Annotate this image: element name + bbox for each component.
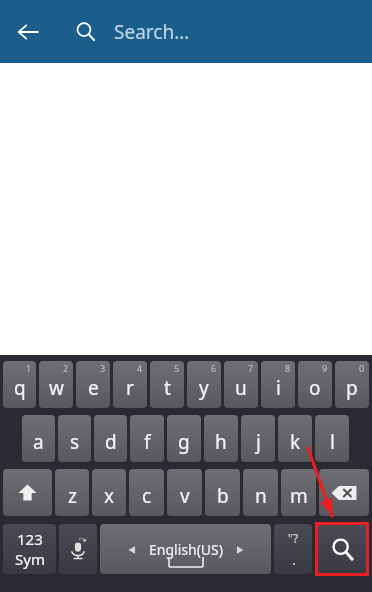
staticText: g xyxy=(178,429,190,455)
button[interactable]: 0 xyxy=(335,361,369,408)
button[interactable]: 1 xyxy=(3,361,36,408)
button[interactable]: 123 xyxy=(3,524,56,574)
button[interactable]: Shift xyxy=(3,469,52,516)
staticText: q xyxy=(14,375,26,401)
button[interactable]: v xyxy=(167,469,202,516)
staticText: 8 xyxy=(285,362,291,374)
staticText: c xyxy=(142,483,152,509)
other: Shift xyxy=(17,482,38,503)
staticText: . xyxy=(292,550,296,569)
button[interactable]: 8 xyxy=(261,361,295,408)
staticText: 7 xyxy=(248,362,254,374)
other: Backspace xyxy=(331,485,357,501)
button[interactable]: g xyxy=(167,415,201,462)
staticText: s xyxy=(70,429,80,455)
other: Voice input xyxy=(67,538,89,560)
staticText: i xyxy=(276,375,281,401)
button[interactable]: 4 xyxy=(113,361,147,408)
staticText: Sym xyxy=(15,549,45,569)
staticText: 2 xyxy=(63,362,69,374)
staticText: 9 xyxy=(322,362,328,374)
button[interactable]: f xyxy=(130,415,164,462)
staticText: x xyxy=(104,483,115,509)
button[interactable]: 2 xyxy=(39,361,73,408)
button[interactable]: Voice input xyxy=(59,524,97,574)
staticText: "? xyxy=(288,530,299,546)
staticText: t xyxy=(164,375,171,401)
button[interactable]: Back xyxy=(0,4,56,60)
staticText: v xyxy=(180,483,190,509)
staticText: d xyxy=(105,429,117,455)
button[interactable]: k xyxy=(278,415,312,462)
button[interactable]: Search xyxy=(318,525,366,573)
staticText: 1 xyxy=(26,362,32,374)
button[interactable]: Backspace xyxy=(319,469,369,516)
staticText: h xyxy=(215,429,227,455)
button[interactable]: b xyxy=(205,469,240,516)
staticText: p xyxy=(346,375,358,401)
button[interactable]: j xyxy=(241,415,275,462)
staticText: a xyxy=(33,429,44,455)
button[interactable]: n xyxy=(243,469,278,516)
button[interactable]: 7 xyxy=(224,361,258,408)
button[interactable]: 6 xyxy=(187,361,221,408)
staticText: w xyxy=(49,375,64,401)
staticText: y xyxy=(199,375,209,401)
button[interactable]: h xyxy=(204,415,238,462)
other: Search xyxy=(331,538,354,561)
button[interactable]: x xyxy=(92,469,126,516)
staticText: 6 xyxy=(211,362,217,374)
staticText: m xyxy=(290,483,308,509)
staticText: z xyxy=(68,483,77,509)
staticText: English(US) xyxy=(149,540,223,559)
staticText: 0 xyxy=(359,362,365,374)
staticText: f xyxy=(144,429,151,455)
staticText: 5 xyxy=(174,362,180,374)
staticText: l xyxy=(330,429,335,455)
staticText: 123 xyxy=(17,529,43,549)
button[interactable]: 9 xyxy=(298,361,332,408)
other: Search xyxy=(76,22,95,41)
staticText: 3 xyxy=(100,362,106,374)
staticText: b xyxy=(217,483,229,509)
staticText: u xyxy=(235,375,247,401)
staticText: n xyxy=(255,483,267,509)
button[interactable]: "? xyxy=(274,524,312,574)
staticText: o xyxy=(309,375,321,401)
button[interactable]: z xyxy=(55,469,89,516)
button[interactable]: d xyxy=(94,415,127,462)
button[interactable]: 5 xyxy=(150,361,184,408)
button[interactable]: English(US) xyxy=(100,524,271,574)
button[interactable]: c xyxy=(129,469,164,516)
staticText: Search... xyxy=(114,19,190,45)
staticText: r xyxy=(126,375,134,401)
staticText: k xyxy=(290,429,301,455)
button[interactable]: l xyxy=(315,415,349,462)
button[interactable]: m xyxy=(281,469,316,516)
button[interactable]: 3 xyxy=(76,361,110,408)
staticText: 4 xyxy=(137,362,143,374)
button[interactable]: a xyxy=(22,415,55,462)
staticText: e xyxy=(88,375,99,401)
button[interactable]: s xyxy=(58,415,91,462)
staticText: j xyxy=(256,429,261,455)
